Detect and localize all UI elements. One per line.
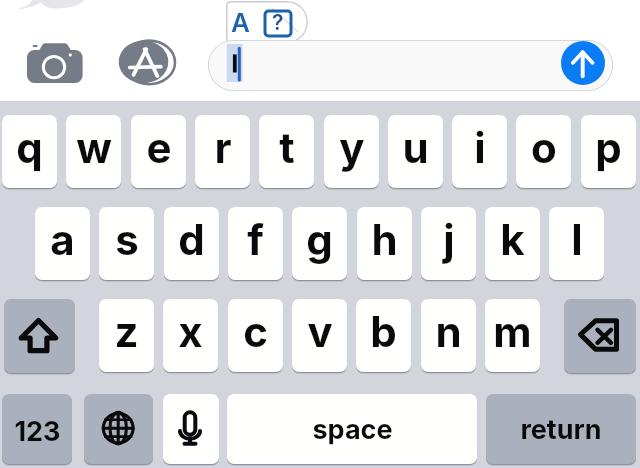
button[interactable]: c: [228, 299, 283, 372]
button[interactable]: k: [485, 207, 540, 280]
staticText: y: [339, 122, 365, 173]
staticText: f: [247, 214, 264, 265]
button[interactable]: 123: [2, 394, 72, 464]
staticText: 123: [14, 415, 61, 448]
button[interactable]: v: [292, 299, 347, 372]
staticText: j: [443, 214, 455, 265]
button[interactable]: return: [486, 394, 636, 464]
button[interactable]: d: [164, 207, 219, 280]
button[interactable]: m: [485, 299, 540, 372]
button[interactable]: space: [227, 394, 477, 464]
button[interactable]: j: [421, 207, 476, 280]
button[interactable]: t: [259, 115, 314, 188]
button[interactable]: Camera: [27, 43, 83, 83]
button[interactable]: Switch keyboard: [84, 394, 153, 464]
button[interactable]: e: [131, 115, 186, 188]
staticText: k: [500, 214, 525, 265]
staticText: v: [307, 306, 333, 357]
button[interactable]: r: [195, 115, 250, 188]
button[interactable]: l: [549, 207, 604, 280]
staticText: t: [279, 122, 295, 173]
staticText: x: [178, 306, 203, 357]
staticText: space: [312, 413, 393, 446]
staticText: i: [474, 122, 486, 173]
button[interactable]: a: [35, 207, 90, 280]
button[interactable]: n: [421, 299, 476, 372]
staticText: l: [571, 214, 583, 265]
button[interactable]: Send: [561, 41, 605, 85]
button[interactable]: w: [66, 115, 121, 188]
staticText: m: [493, 306, 532, 357]
staticText: o: [531, 122, 557, 173]
staticText: a: [50, 214, 75, 265]
button[interactable]: [208, 40, 613, 91]
staticText: c: [243, 306, 268, 357]
button[interactable]: z: [99, 299, 154, 372]
button[interactable]: x: [163, 299, 218, 372]
button[interactable]: f: [228, 207, 283, 280]
button[interactable]: s: [99, 207, 154, 280]
staticText: b: [370, 306, 397, 357]
button[interactable]: o: [516, 115, 571, 188]
staticText: z: [114, 306, 139, 357]
button[interactable]: g: [292, 207, 347, 280]
staticText: p: [595, 122, 622, 173]
staticText: h: [371, 214, 398, 265]
button[interactable]: p: [581, 115, 636, 188]
button[interactable]: y: [324, 115, 379, 188]
button[interactable]: App Store: [118, 40, 178, 85]
button[interactable]: b: [356, 299, 411, 372]
button[interactable]: Shift: [4, 299, 75, 373]
button[interactable]: h: [357, 207, 412, 280]
staticText: ?: [272, 10, 284, 35]
button[interactable]: Help: [265, 11, 291, 36]
staticText: q: [16, 122, 43, 173]
staticText: s: [115, 214, 139, 265]
staticText: d: [178, 214, 205, 265]
staticText: n: [435, 306, 462, 357]
button[interactable]: Dictate: [163, 394, 219, 464]
staticText: r: [214, 122, 232, 173]
button[interactable]: u: [388, 115, 443, 188]
button[interactable]: q: [2, 115, 57, 188]
staticText: g: [306, 214, 333, 265]
staticText: e: [146, 122, 172, 173]
staticText: w: [76, 122, 112, 173]
button[interactable]: Backspace: [564, 299, 636, 373]
staticText: return: [520, 413, 602, 446]
staticText: u: [402, 122, 429, 173]
button[interactable]: i: [452, 115, 507, 188]
staticText: A: [231, 7, 250, 38]
